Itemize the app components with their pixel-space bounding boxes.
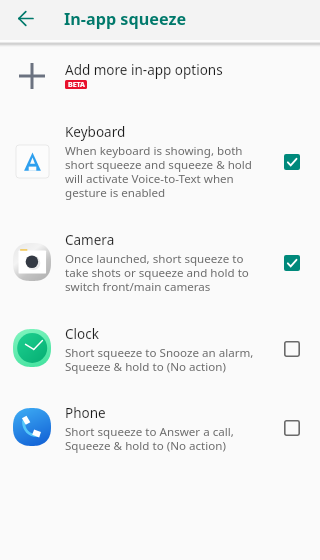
staticText: Clock <box>65 325 99 343</box>
staticText: Phone <box>65 404 106 422</box>
button[interactable] <box>0 50 320 97</box>
staticText: Short squeeze to Snooze an alarm, Squeez… <box>65 345 254 375</box>
button[interactable] <box>0 392 320 464</box>
button[interactable] <box>0 313 320 385</box>
button[interactable]: Toggle Phone <box>276 412 308 444</box>
staticText: Keyboard <box>65 123 126 141</box>
button[interactable]: Back <box>7 0 43 36</box>
button[interactable]: Toggle Clock <box>276 333 308 365</box>
staticText: Add more in-app options <box>65 61 223 79</box>
button[interactable] <box>0 112 320 212</box>
staticText: In-app squeeze <box>64 8 187 30</box>
staticText: Once launched, short squeeze to take sho… <box>65 251 249 295</box>
staticText: When keyboard is showing, both short squ… <box>65 143 252 201</box>
staticText: Short squeeze to Answer a call, Squeeze … <box>65 424 234 454</box>
button[interactable]: Toggle Keyboard <box>276 146 308 178</box>
staticText: Camera <box>65 231 115 249</box>
button[interactable]: Toggle Camera <box>276 247 308 279</box>
staticText: BETA <box>68 80 85 89</box>
button[interactable] <box>0 220 320 305</box>
